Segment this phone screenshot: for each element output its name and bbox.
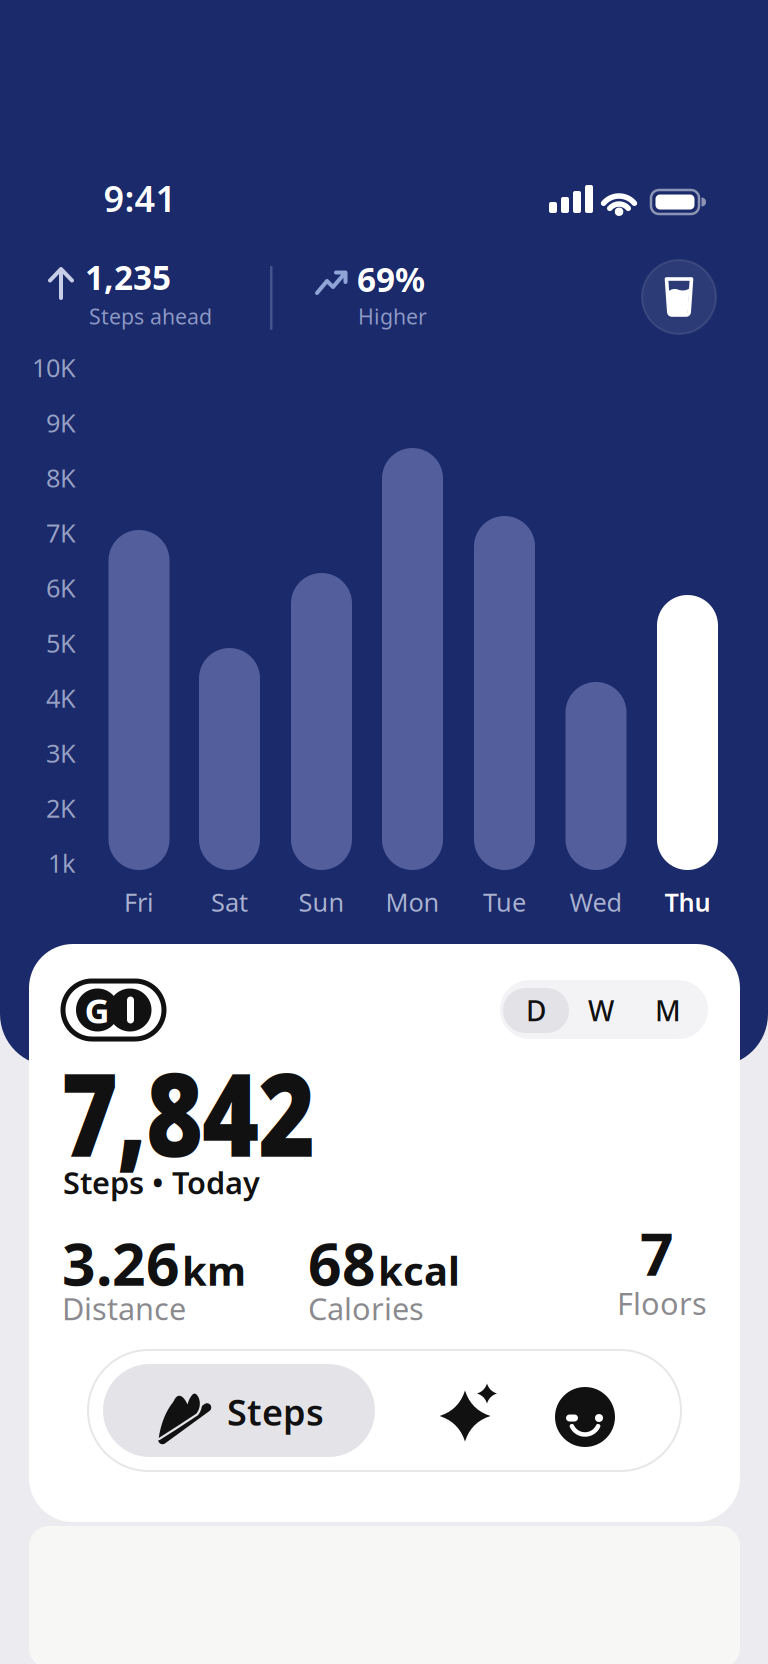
staticText: 8K: [46, 461, 76, 494]
staticText: 7,842: [61, 1036, 360, 1188]
staticText: D: [526, 992, 546, 1029]
staticText: 1k: [48, 846, 76, 880]
staticText: 3.26: [62, 1224, 180, 1302]
staticText: 2K: [46, 791, 76, 825]
staticText: Floors: [617, 1283, 707, 1323]
staticText: Steps • Today: [63, 1162, 260, 1203]
button[interactable]: Steps: [103, 1364, 375, 1457]
staticText: M: [655, 992, 681, 1029]
button[interactable]: Log water: [642, 260, 716, 334]
staticText: 68: [308, 1224, 376, 1302]
staticText: Mon: [385, 885, 439, 919]
staticText: Distance: [62, 1288, 186, 1329]
staticText: 69%: [357, 257, 425, 301]
staticText: 1,235: [85, 255, 171, 299]
staticText: Sat: [211, 885, 248, 919]
staticText: 7K: [46, 516, 76, 549]
staticText: Wed: [569, 885, 622, 919]
staticText: W: [588, 992, 614, 1029]
staticText: 5K: [46, 626, 76, 660]
staticText: Steps: [227, 1388, 324, 1436]
staticText: Fri: [124, 885, 154, 919]
staticText: 3K: [46, 736, 76, 770]
staticText: 7: [640, 1214, 674, 1292]
staticText: Sun: [298, 885, 344, 919]
staticText: 10K: [32, 351, 76, 384]
button[interactable]: Mood: [552, 1384, 618, 1450]
staticText: km: [182, 1244, 246, 1297]
button[interactable]: W: [571, 988, 631, 1033]
staticText: kcal: [378, 1244, 460, 1297]
staticText: Thu: [664, 885, 710, 919]
staticText: 6K: [46, 571, 76, 604]
staticText: G: [84, 987, 109, 1033]
staticText: Calories: [308, 1288, 424, 1329]
staticText: 4K: [46, 681, 76, 715]
staticText: 9K: [46, 406, 76, 439]
button[interactable]: Insights: [431, 1374, 507, 1450]
staticText: 9:41: [103, 174, 176, 222]
button[interactable]: D: [503, 988, 569, 1033]
staticText: Steps ahead: [89, 302, 212, 330]
staticText: Higher: [358, 302, 427, 330]
button[interactable]: M: [638, 988, 698, 1033]
staticText: Tue: [483, 885, 526, 919]
